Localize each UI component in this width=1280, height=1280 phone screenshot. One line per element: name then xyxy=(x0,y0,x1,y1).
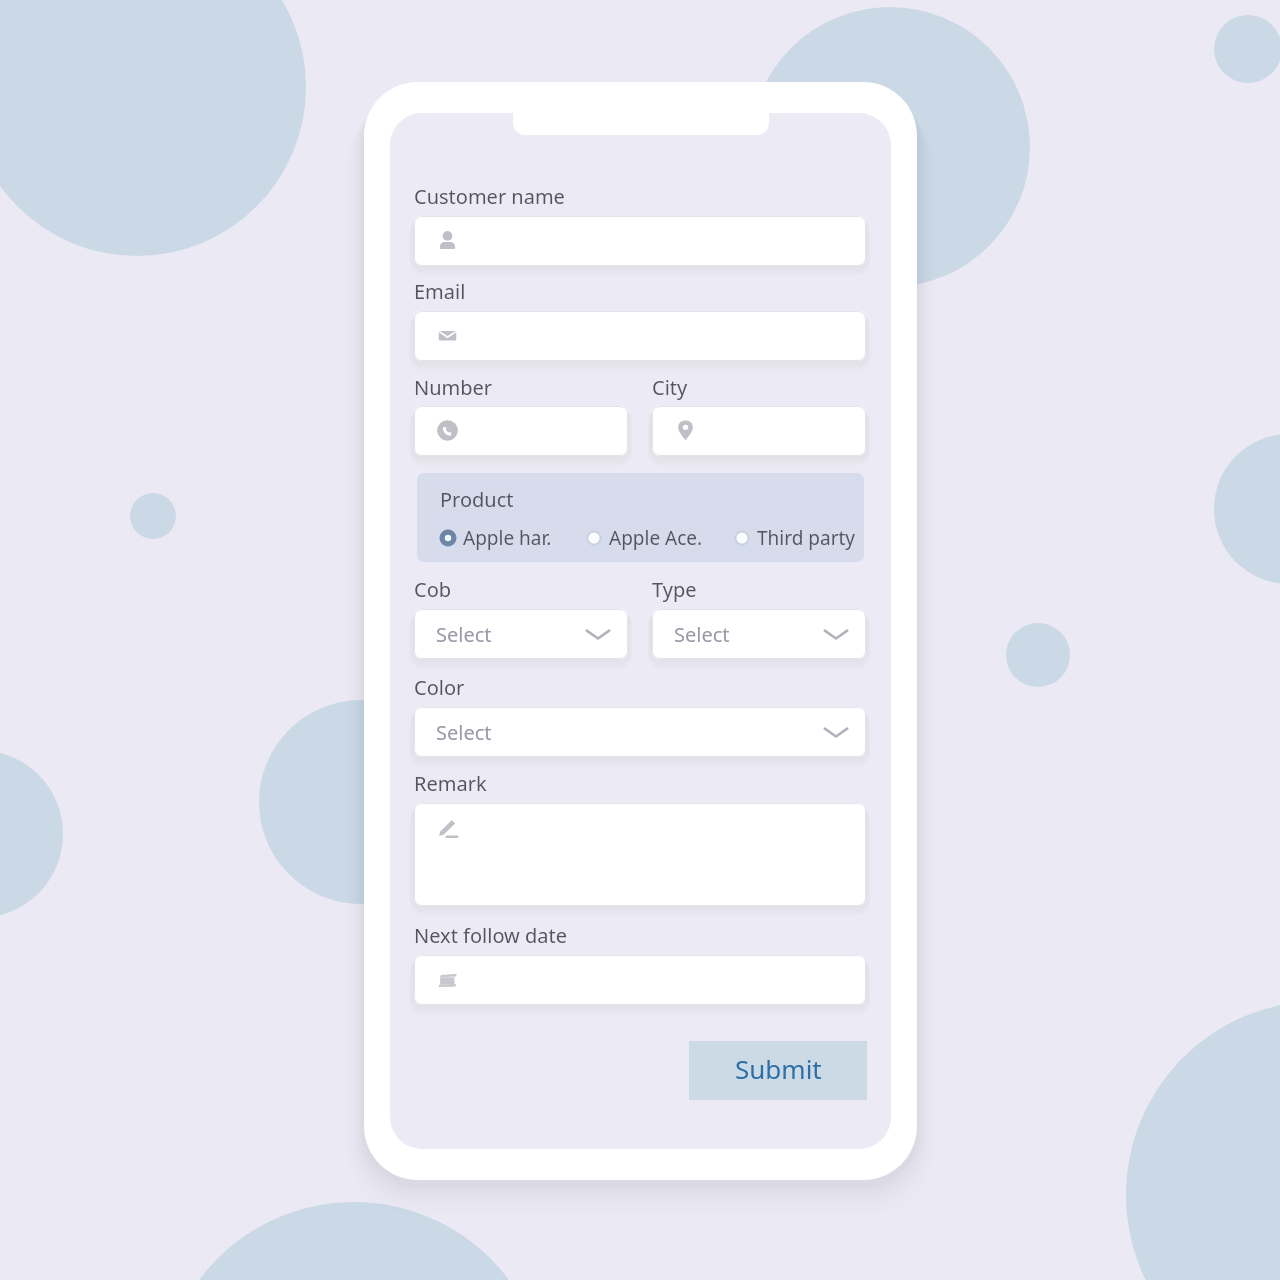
button[interactable]: Cob xyxy=(414,609,628,659)
staticText: Apple Ace. xyxy=(609,525,703,551)
staticText: Remark xyxy=(414,770,487,797)
staticText: Type xyxy=(652,576,697,603)
staticText: Select xyxy=(436,621,492,648)
staticText: Product xyxy=(440,486,514,513)
button[interactable]: Next follow date xyxy=(414,955,866,1005)
staticText: Next follow date xyxy=(414,922,568,949)
staticText: Submit xyxy=(735,1051,822,1086)
staticText: Select xyxy=(674,621,730,648)
staticText: Third party xyxy=(757,525,856,551)
button[interactable]: Third party xyxy=(733,525,856,551)
button[interactable]: Customer name xyxy=(414,216,866,266)
staticText: Apple har. xyxy=(463,525,552,551)
button[interactable]: Remark xyxy=(414,803,866,906)
staticText: City xyxy=(652,374,688,401)
staticText: Customer name xyxy=(414,183,565,210)
staticText: Select xyxy=(436,719,492,746)
button[interactable]: Submit xyxy=(689,1041,867,1100)
staticText: Cob xyxy=(414,576,452,603)
staticText: Number xyxy=(414,374,493,401)
button[interactable]: Apple har. xyxy=(439,525,552,551)
button[interactable]: Color xyxy=(414,707,866,757)
button[interactable]: Email xyxy=(414,311,866,361)
button[interactable]: Number xyxy=(414,406,628,456)
button[interactable]: Apple Ace. xyxy=(585,525,703,551)
staticText: Email xyxy=(414,278,466,305)
staticText: Color xyxy=(414,674,465,701)
button[interactable]: Type xyxy=(652,609,866,659)
button[interactable]: City xyxy=(652,406,866,456)
